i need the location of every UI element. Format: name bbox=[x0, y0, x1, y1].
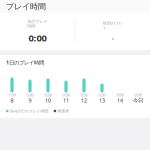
staticText: 前回のプレイ bbox=[103, 21, 123, 30]
staticText: 13 bbox=[99, 97, 105, 104]
staticText: 12 bbox=[81, 97, 87, 104]
staticText: 1:09 bbox=[8, 92, 15, 98]
staticText: 14 bbox=[117, 97, 123, 104]
staticText: 0:56 bbox=[80, 92, 87, 98]
staticText: プレイ時間 bbox=[6, 2, 46, 11]
staticText: 0:00 bbox=[28, 32, 46, 44]
staticText: 0:30 bbox=[98, 92, 105, 98]
staticText: 1日のプレイ時間 bbox=[6, 59, 44, 66]
staticText: 保護者 bbox=[56, 108, 69, 113]
staticText: 8 bbox=[10, 97, 13, 104]
staticText: 今日 bbox=[133, 97, 143, 104]
staticText: 0:38 bbox=[62, 92, 69, 98]
staticText: 0:58 bbox=[44, 92, 51, 98]
staticText: 0:00 bbox=[116, 92, 123, 98]
staticText: 0:00 bbox=[134, 92, 141, 98]
staticText: 合計プレイ時間 bbox=[27, 19, 47, 29]
staticText: 0:45 bbox=[26, 92, 33, 98]
staticText: 9 bbox=[28, 97, 31, 104]
staticText: - bbox=[112, 33, 114, 42]
staticText: 10 bbox=[45, 97, 51, 104]
staticText: 11 bbox=[63, 97, 69, 104]
staticText: Switchでのプレイ時間 bbox=[9, 108, 49, 114]
